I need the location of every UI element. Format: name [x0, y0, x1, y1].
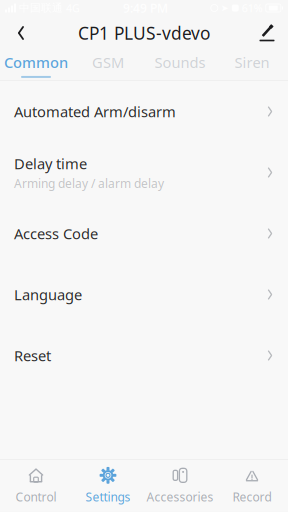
staticText: Arming delay / alarm delay [14, 175, 164, 191]
button[interactable]: Language [0, 264, 288, 325]
staticText: Record [232, 489, 271, 505]
staticText: CP1 PLUS-vdevo [78, 21, 210, 44]
staticText: Delay time [14, 154, 87, 173]
staticText: Language [14, 285, 82, 304]
button[interactable]: Reset [0, 325, 288, 386]
staticText: Accessories [146, 489, 213, 505]
button[interactable]: Control [0, 460, 72, 512]
staticText: Control [15, 489, 56, 505]
button[interactable]: Settings [72, 460, 144, 512]
staticText: Access Code [14, 224, 98, 243]
button[interactable]: Sounds [144, 50, 216, 80]
staticText: GSM [92, 52, 124, 72]
staticText: Settings [85, 489, 130, 505]
button[interactable]: Delay time [0, 142, 288, 203]
button[interactable]: Siren [216, 50, 288, 80]
staticText: Siren [234, 52, 269, 72]
button[interactable]: Edit [250, 16, 284, 50]
button[interactable]: Access Code [0, 203, 288, 264]
button[interactable]: Record [216, 460, 288, 512]
button[interactable]: Back [4, 16, 38, 50]
staticText: Automated Arm/disarm [14, 102, 176, 121]
button[interactable]: Common [0, 50, 72, 80]
staticText: Common [4, 52, 68, 72]
button[interactable]: Automated Arm/disarm [0, 81, 288, 142]
button[interactable]: GSM [72, 50, 144, 80]
button[interactable]: Accessories [144, 460, 216, 512]
staticText: Sounds [154, 52, 205, 72]
staticText: Reset [14, 346, 51, 365]
